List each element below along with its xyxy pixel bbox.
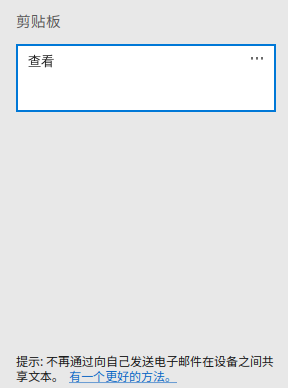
button[interactable]: More options [251,57,263,60]
button[interactable]: 查看 [17,45,275,111]
staticText: 剪贴板 [16,10,61,31]
button[interactable]: 有一个更好的方法。 [69,367,177,384]
staticText: 查看 [28,53,54,70]
staticText: 有一个更好的方法。 [69,367,177,384]
staticText: 享文本。 [16,367,64,384]
staticText: 提示: 不再通过向自己发送电子邮件在设备之间共 [16,352,274,369]
